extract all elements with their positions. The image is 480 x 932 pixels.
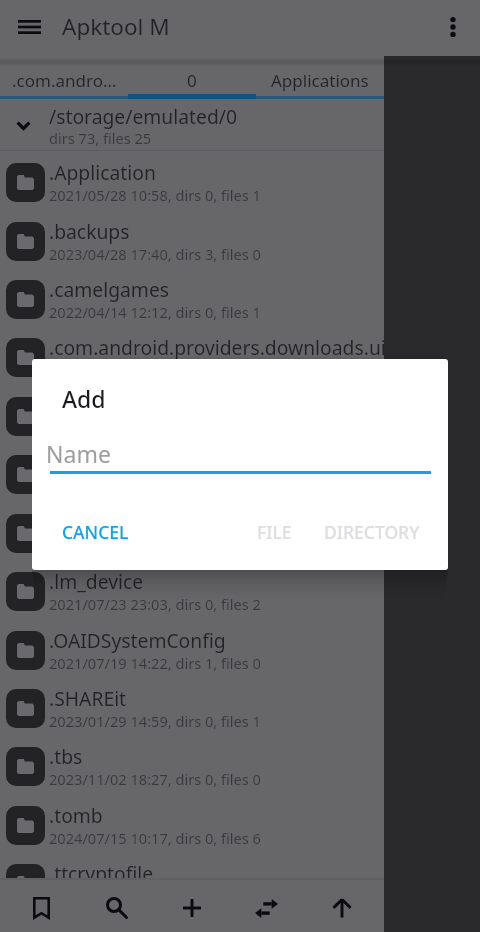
staticText: DIRECTORY xyxy=(324,520,420,544)
staticText: .ttcryptofile xyxy=(49,860,154,886)
button[interactable]: /storage/emulated/0 xyxy=(0,99,384,151)
staticText: 2021/05/28 10:58, dirs 0, files 1 xyxy=(49,185,261,205)
staticText: 2023/11/02 18:27, dirs 0, files 0 xyxy=(49,769,261,789)
staticText: .camelgames xyxy=(49,276,170,302)
button[interactable]: Applications xyxy=(256,56,384,99)
button[interactable]: Transfer xyxy=(229,878,304,932)
button[interactable]: CANCEL xyxy=(62,508,129,556)
button[interactable]: Up one level xyxy=(304,878,379,932)
staticText: FILE xyxy=(257,520,292,544)
staticText: CANCEL xyxy=(62,520,129,544)
staticText: .Application xyxy=(49,159,156,185)
staticText: .com.android.providers.downloads.ui xyxy=(49,334,386,360)
staticText: 2023/01/29 14:59, dirs 0, files 1 xyxy=(49,711,261,731)
staticText: dirs 73, files 25 xyxy=(49,128,152,148)
staticText: .SHAREit xyxy=(49,685,127,711)
staticText: 2023/04/28 17:40, dirs 3, files 0 xyxy=(49,244,261,264)
staticText: .ins_global xyxy=(49,510,146,536)
staticText: Applications xyxy=(271,69,369,92)
staticText: Apktool M xyxy=(62,11,170,42)
staticText: /storage/emulated/0 xyxy=(49,103,237,129)
button[interactable]: .tomb xyxy=(0,794,384,852)
button[interactable]: .lm_device xyxy=(0,560,384,618)
button[interactable]: .ins_global xyxy=(0,502,384,560)
button[interactable]: .tbs xyxy=(0,735,384,793)
button[interactable]: .com.andro… xyxy=(0,56,128,99)
button[interactable]: .Application xyxy=(0,151,384,209)
staticText: 2021/07/19 14:22, dirs 1, files 0 xyxy=(49,653,261,673)
staticText: Name xyxy=(46,438,111,469)
button[interactable]: .backups xyxy=(0,210,384,268)
staticText: 2024/07/15 10:17, dirs 0, files 6 xyxy=(49,828,261,848)
button[interactable]: .com.android.providers.downloads.ui xyxy=(0,326,384,384)
button[interactable]: Bookmarks xyxy=(4,878,79,932)
button[interactable]: .ttcryptofile xyxy=(0,852,384,910)
button[interactable]: New xyxy=(154,878,229,932)
button[interactable]: .gs_fs0 xyxy=(0,443,384,501)
staticText: 2022/04/14 12:12, dirs 0, files 1 xyxy=(49,302,261,322)
button[interactable]: .camelgames xyxy=(0,268,384,326)
button[interactable]: DIRECTORY xyxy=(324,508,420,556)
staticText: .lm_device xyxy=(49,568,144,594)
button[interactable]: 0 xyxy=(128,56,256,99)
staticText: .DataStorage xyxy=(49,393,168,419)
button[interactable]: FILE xyxy=(257,508,292,556)
button[interactable]: More options xyxy=(427,2,479,54)
staticText: .gs_fs0 xyxy=(49,451,111,477)
staticText: .OAIDSystemConfig xyxy=(49,627,226,653)
staticText: Add xyxy=(62,383,106,414)
staticText: 2021/07/23 23:03, dirs 0, files 2 xyxy=(49,594,261,614)
staticText: .backups xyxy=(49,218,130,244)
button[interactable]: Search xyxy=(79,878,154,932)
button[interactable]: .SHAREit xyxy=(0,677,384,735)
staticText: .tbs xyxy=(49,743,83,769)
staticText: 2022/05/05 05:05, dirs 0, files 0 xyxy=(49,886,261,906)
staticText: .tomb xyxy=(49,802,103,828)
staticText: 0 xyxy=(187,69,197,92)
button[interactable]: .DataStorage xyxy=(0,385,384,443)
button[interactable]: .OAIDSystemConfig xyxy=(0,619,384,677)
staticText: 2022/02/09 15:36, dirs 0, files 1 xyxy=(49,536,261,556)
staticText: .com.andro… xyxy=(12,69,117,92)
button[interactable]: Open navigation drawer xyxy=(3,2,55,54)
